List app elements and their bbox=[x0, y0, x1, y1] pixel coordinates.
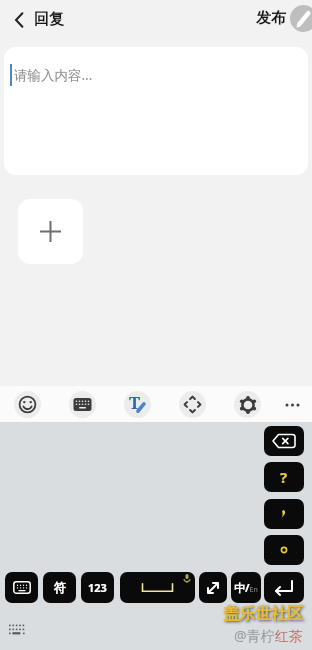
button[interactable] bbox=[290, 5, 312, 32]
button[interactable] bbox=[69, 391, 96, 418]
button[interactable] bbox=[264, 572, 304, 603]
staticText: 123 bbox=[88, 580, 107, 595]
button[interactable]: T bbox=[124, 391, 151, 418]
button[interactable] bbox=[5, 572, 38, 603]
button[interactable] bbox=[6, 6, 34, 34]
button[interactable] bbox=[234, 391, 261, 418]
button[interactable] bbox=[264, 426, 304, 456]
button[interactable]: 中/En bbox=[231, 572, 261, 603]
button[interactable] bbox=[264, 499, 304, 529]
button[interactable]: 请输入内容... bbox=[4, 47, 308, 175]
button[interactable] bbox=[279, 391, 306, 418]
staticText: 盖乐世社区 bbox=[223, 604, 303, 624]
staticText: @青柠红茶 bbox=[234, 626, 303, 645]
button[interactable] bbox=[179, 391, 206, 418]
button[interactable]: 符 bbox=[43, 572, 76, 603]
button[interactable] bbox=[120, 572, 195, 603]
staticText: 回复 bbox=[34, 10, 64, 29]
button[interactable]: 发布 bbox=[250, 3, 292, 33]
staticText: 发布 bbox=[256, 9, 286, 28]
button[interactable] bbox=[264, 535, 304, 565]
staticText: 符 bbox=[54, 580, 66, 595]
button[interactable]: 123 bbox=[81, 572, 114, 603]
staticText: T bbox=[129, 391, 141, 414]
staticText: 请输入内容... bbox=[14, 66, 93, 84]
staticText: ? bbox=[280, 467, 288, 487]
button[interactable] bbox=[199, 572, 227, 603]
button[interactable] bbox=[14, 391, 41, 418]
staticText: 中/En bbox=[234, 580, 258, 595]
button[interactable] bbox=[18, 199, 83, 264]
button[interactable]: ? bbox=[264, 462, 304, 492]
